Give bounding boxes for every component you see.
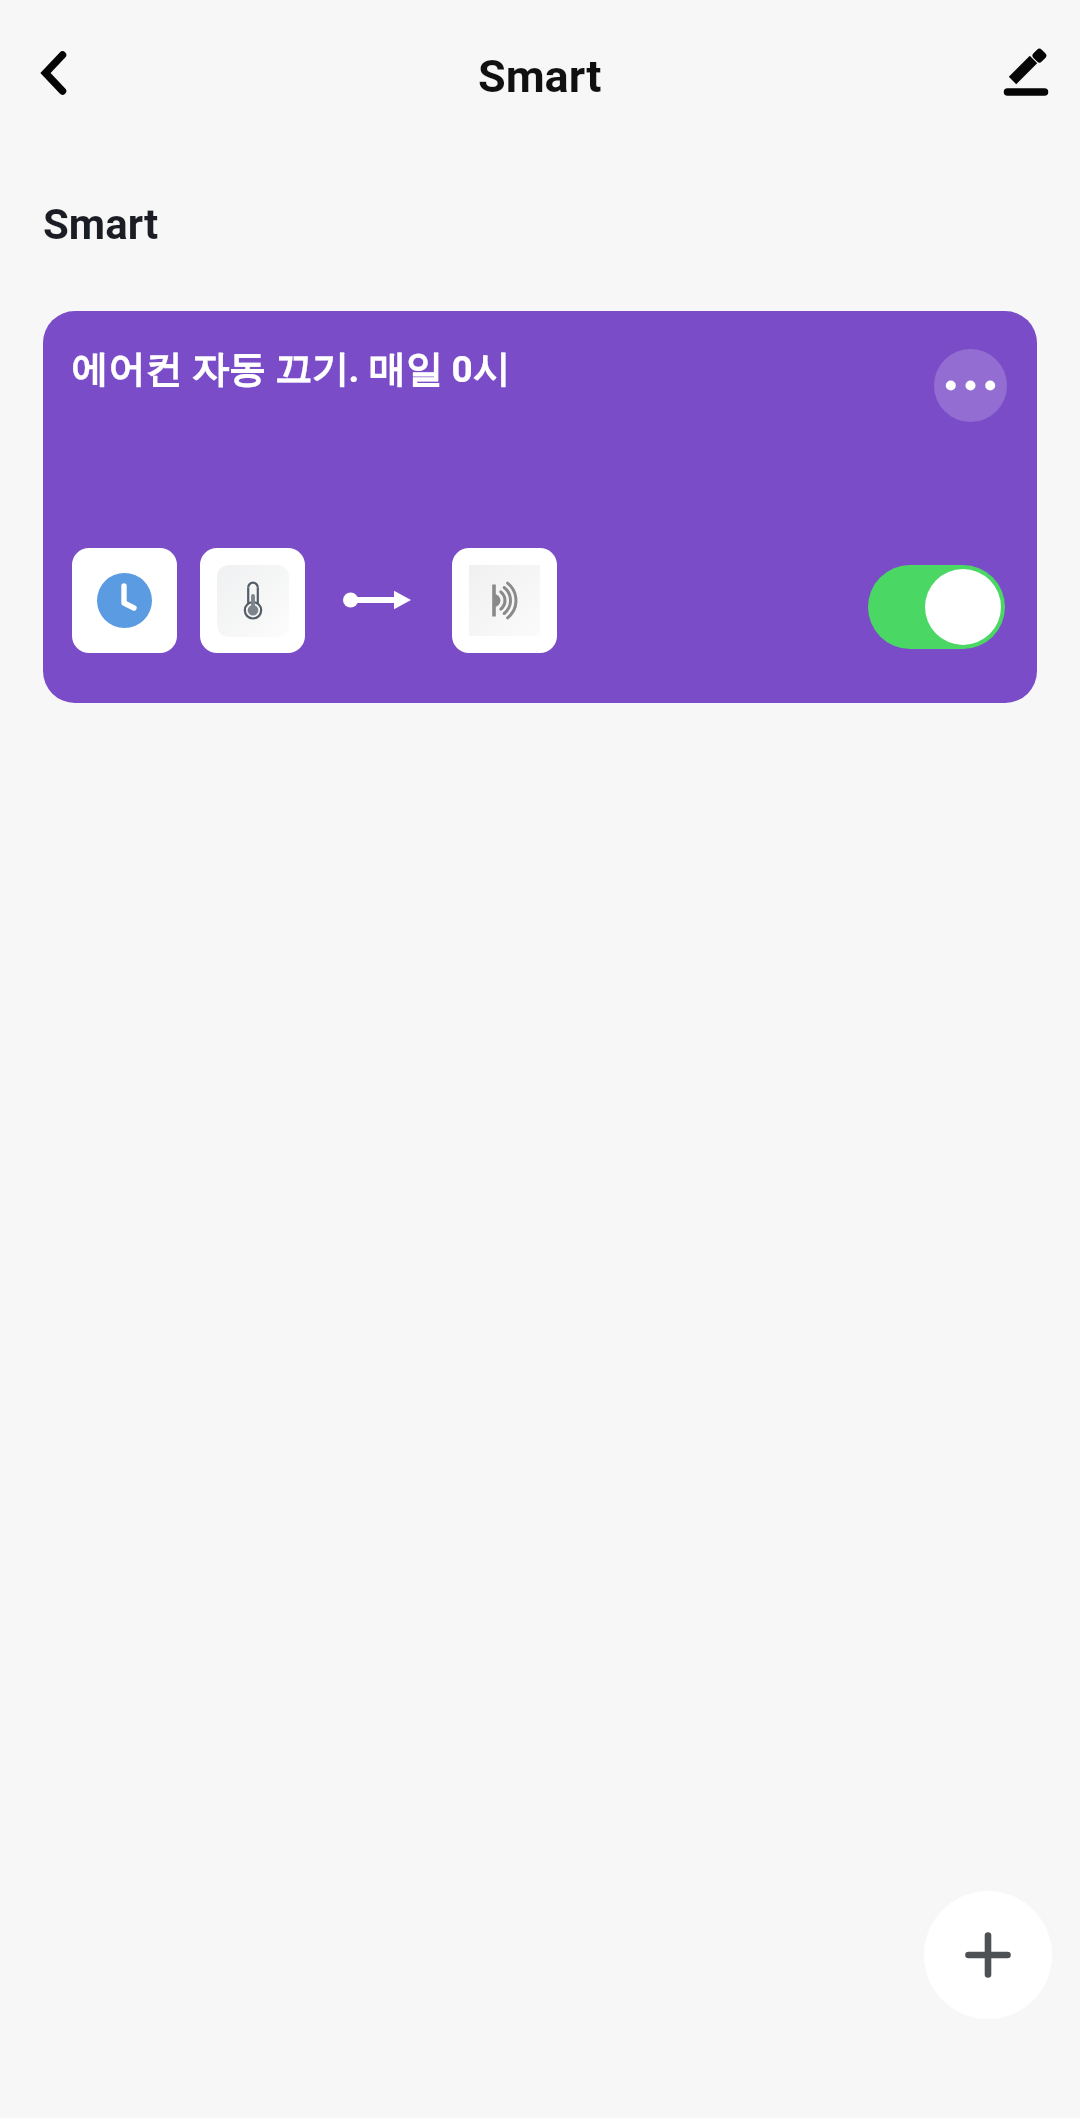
button[interactable]: Add: [924, 1891, 1052, 2019]
staticText: Smart: [43, 200, 159, 249]
button[interactable]: Toggle scene: [868, 565, 1005, 649]
button[interactable]: Edit: [990, 37, 1062, 109]
staticText: Smart: [478, 50, 602, 103]
button[interactable]: More options: [934, 349, 1007, 422]
staticText: 에어컨 자동 끄기. 매일 0시: [71, 346, 510, 393]
button[interactable]: Back: [18, 37, 90, 109]
button[interactable]: 에어컨 자동 끄기. 매일 0시: [43, 311, 1037, 703]
